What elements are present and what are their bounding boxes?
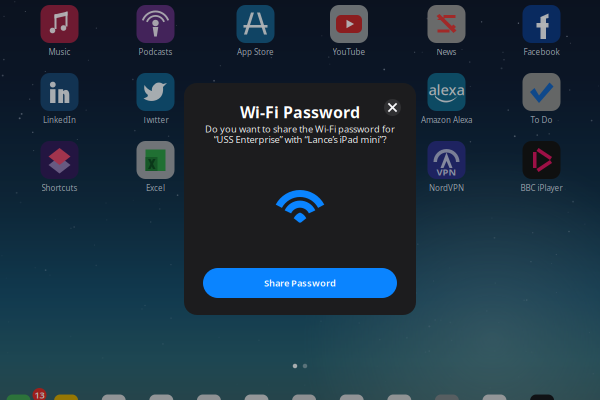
button[interactable]: LinkedIn (0, 0, 600, 400)
button[interactable]: alexa (0, 0, 600, 400)
staticText: NordVPN (429, 183, 464, 193)
staticText: Facebook (523, 47, 559, 57)
staticText: Share Password (264, 277, 336, 289)
button[interactable]: Twitter (0, 0, 600, 400)
staticText: 13 (34, 389, 44, 400)
staticText: Shortcuts (41, 183, 77, 193)
staticText: Do you want to share the Wi-Fi password … (205, 123, 395, 135)
staticText: News (436, 47, 456, 57)
button[interactable]: App Store (0, 0, 600, 400)
button[interactable]: Close (378, 93, 406, 121)
button[interactable]: YouTube (0, 0, 600, 400)
staticText: LinkedIn (43, 115, 76, 125)
staticText: Music (48, 47, 70, 57)
staticText: VPN (436, 166, 456, 178)
button[interactable]: Share Password (203, 268, 397, 298)
button[interactable]: Facebook (0, 0, 600, 400)
button[interactable]: To Do (0, 0, 600, 400)
button[interactable]: Podcasts (0, 0, 600, 400)
staticText: Amazon Alexa (421, 115, 472, 125)
staticText: YouTube (332, 47, 365, 57)
staticText: Twitter (142, 115, 168, 125)
staticText: To Do (530, 115, 552, 125)
staticText: App Store (237, 47, 274, 57)
staticText: “USS Enterprise” with “Lance’s iPad mini… (213, 133, 386, 146)
button[interactable]: BBC iPlayer (0, 0, 600, 400)
staticText: BBC iPlayer (520, 183, 562, 193)
button[interactable]: Music (0, 0, 600, 400)
button[interactable]: VPN (0, 0, 600, 400)
button[interactable]: News (0, 0, 600, 400)
button[interactable]: Excel (0, 0, 600, 400)
staticText: Podcasts (138, 47, 172, 57)
staticText: Excel (146, 183, 165, 193)
button[interactable]: Shortcuts (0, 0, 600, 400)
staticText: alexa (428, 80, 464, 99)
staticText: Wi-Fi Password (240, 101, 360, 123)
